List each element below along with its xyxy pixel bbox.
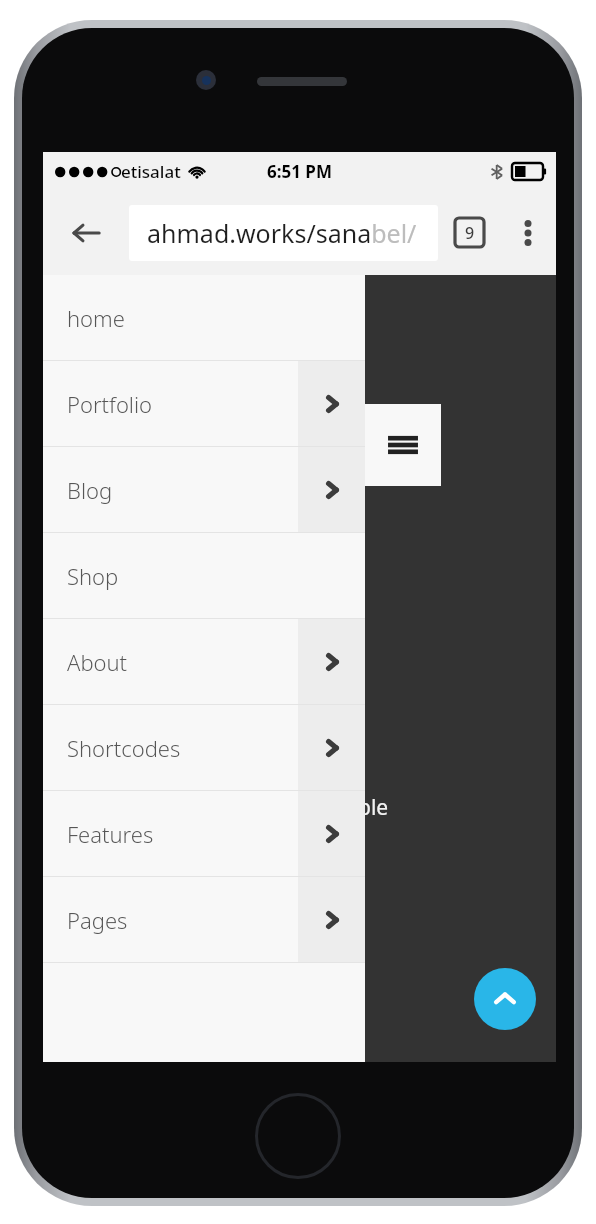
staticText: Shortcodes <box>67 733 181 763</box>
staticText: Portfolio <box>67 389 153 419</box>
button[interactable]: Toggle menu <box>365 404 441 486</box>
staticText: About <box>67 647 128 677</box>
button[interactable]: Tabs <box>438 190 500 275</box>
staticText: ahmad.works/sanabel/ <box>147 216 417 250</box>
button[interactable]: home <box>43 275 365 360</box>
button[interactable]: Expand About <box>298 619 365 704</box>
button[interactable]: Expand Pages <box>298 877 365 962</box>
button[interactable]: Expand Portfolio <box>298 361 365 446</box>
button[interactable]: Expand Blog <box>298 447 365 532</box>
button[interactable]: Expand Shortcodes <box>298 705 365 790</box>
staticText: Shop <box>67 561 119 591</box>
staticText: Pages <box>67 905 128 935</box>
button[interactable]: Shop <box>43 533 365 618</box>
staticText: Features <box>67 819 154 849</box>
button[interactable]: Features <box>43 791 365 876</box>
button[interactable]: ahmad.works/sanabel/ <box>129 205 438 261</box>
button[interactable]: Shortcodes <box>43 705 365 790</box>
staticText: 6:51 PM <box>267 160 332 183</box>
staticText: 9 <box>465 222 475 244</box>
button[interactable]: Back <box>43 190 129 275</box>
button[interactable]: Pages <box>43 877 365 962</box>
staticText: Blog <box>67 475 113 505</box>
button[interactable]: About <box>43 619 365 704</box>
button[interactable]: Scroll to top <box>474 968 536 1030</box>
staticText: etisalat <box>121 160 181 183</box>
button[interactable]: Blog <box>43 447 365 532</box>
button[interactable]: Portfolio <box>43 361 365 446</box>
staticText: home <box>67 303 125 333</box>
button[interactable]: Expand Features <box>298 791 365 876</box>
button[interactable]: More options <box>500 190 556 275</box>
staticText: ble <box>358 793 389 822</box>
